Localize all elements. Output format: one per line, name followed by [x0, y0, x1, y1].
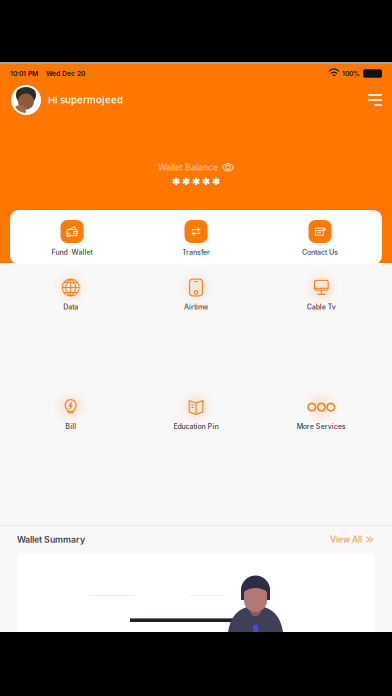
staticText: Contact Us [302, 248, 338, 256]
staticText: Education Pin [173, 422, 218, 431]
staticText: View All [330, 534, 362, 544]
button[interactable]: Cable Tv [259, 275, 384, 311]
staticText: 100% [342, 69, 360, 78]
button[interactable]: More Services [259, 395, 384, 431]
staticText: Bill [65, 422, 76, 431]
staticText: Fund Wallet [51, 248, 92, 256]
button[interactable]: Data [8, 275, 133, 311]
button[interactable]: Transfer [134, 220, 258, 256]
button[interactable]: Bill [8, 395, 133, 431]
button[interactable]: Education Pin [133, 395, 259, 431]
staticText: Wallet Summary [17, 534, 85, 545]
staticText: Wed Dec 20 [46, 69, 85, 78]
staticText: Data [63, 302, 78, 311]
button[interactable]: Contact Us [258, 220, 382, 256]
staticText: 10:01 PM [10, 69, 38, 78]
button[interactable]: Fund Wallet [10, 220, 134, 256]
button[interactable]: Airtime [133, 275, 259, 311]
staticText: Airtime [184, 302, 208, 311]
staticText: More Services [297, 422, 346, 431]
staticText: Hi supermojeed [48, 94, 123, 106]
staticText: Transfer [182, 248, 210, 256]
staticText: Wallet Balance [158, 162, 218, 173]
button[interactable]: Menu [364, 89, 386, 111]
button[interactable]: View All [328, 530, 375, 548]
staticText: Cable Tv [307, 302, 336, 311]
